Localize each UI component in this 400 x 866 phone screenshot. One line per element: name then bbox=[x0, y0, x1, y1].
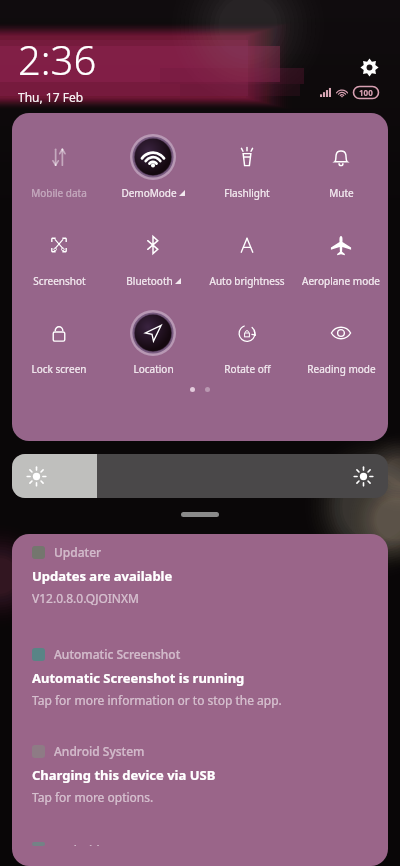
button[interactable]: Auto brightness bbox=[200, 220, 294, 290]
staticText: Android System bbox=[54, 842, 145, 846]
staticText: Mobile data bbox=[31, 186, 87, 200]
button[interactable]: Android System bbox=[12, 832, 388, 866]
staticText: Bluetooth bbox=[126, 274, 173, 288]
staticText: Aeroplane mode bbox=[302, 274, 380, 288]
staticText: Thu, 17 Feb bbox=[18, 89, 84, 105]
button[interactable]: Screenshot bbox=[12, 220, 106, 290]
button[interactable]: Location bbox=[106, 308, 200, 378]
staticText: Tap for more options. bbox=[32, 789, 154, 805]
staticText: Location bbox=[133, 362, 174, 376]
staticText: Updates are available bbox=[32, 567, 173, 585]
button[interactable]: Settings bbox=[355, 53, 383, 81]
button[interactable]: Mute bbox=[294, 132, 388, 202]
button[interactable]: Updater bbox=[12, 534, 388, 636]
staticText: DemoMode bbox=[121, 186, 177, 200]
button[interactable]: Rotate off bbox=[200, 308, 294, 378]
button[interactable]: Lock screen bbox=[12, 308, 106, 378]
staticText: V12.0.8.0.QJOINXM bbox=[32, 590, 139, 606]
button[interactable]: Brightness bbox=[12, 454, 388, 498]
staticText: Updater bbox=[54, 544, 102, 560]
button[interactable]: Android System bbox=[12, 733, 388, 832]
button[interactable]: Reading mode bbox=[294, 308, 388, 378]
staticText: Reading mode bbox=[307, 362, 376, 376]
button[interactable]: Mobile data bbox=[12, 132, 106, 202]
staticText: Automatic Screenshot bbox=[54, 646, 181, 662]
button[interactable]: Aeroplane mode bbox=[294, 220, 388, 290]
button[interactable]: DemoMode bbox=[106, 132, 200, 202]
staticText: Screenshot bbox=[33, 274, 86, 288]
staticText: Lock screen bbox=[31, 362, 87, 376]
staticText: Android System bbox=[54, 743, 145, 759]
staticText: Rotate off bbox=[224, 362, 271, 376]
button[interactable]: Flashlight bbox=[200, 132, 294, 202]
staticText: Mute bbox=[329, 186, 354, 200]
staticText: Automatic Screenshot is running bbox=[32, 669, 245, 687]
staticText: 2:36 bbox=[18, 32, 97, 86]
button[interactable] bbox=[181, 512, 219, 517]
staticText: 100 bbox=[359, 87, 373, 98]
staticText: Auto brightness bbox=[209, 274, 285, 288]
staticText: Tap for more information or to stop the … bbox=[32, 692, 282, 708]
staticText: Charging this device via USB bbox=[32, 766, 216, 784]
staticText: Flashlight bbox=[224, 186, 270, 200]
button[interactable]: Bluetooth bbox=[106, 220, 200, 290]
button[interactable]: Automatic Screenshot bbox=[12, 636, 388, 733]
